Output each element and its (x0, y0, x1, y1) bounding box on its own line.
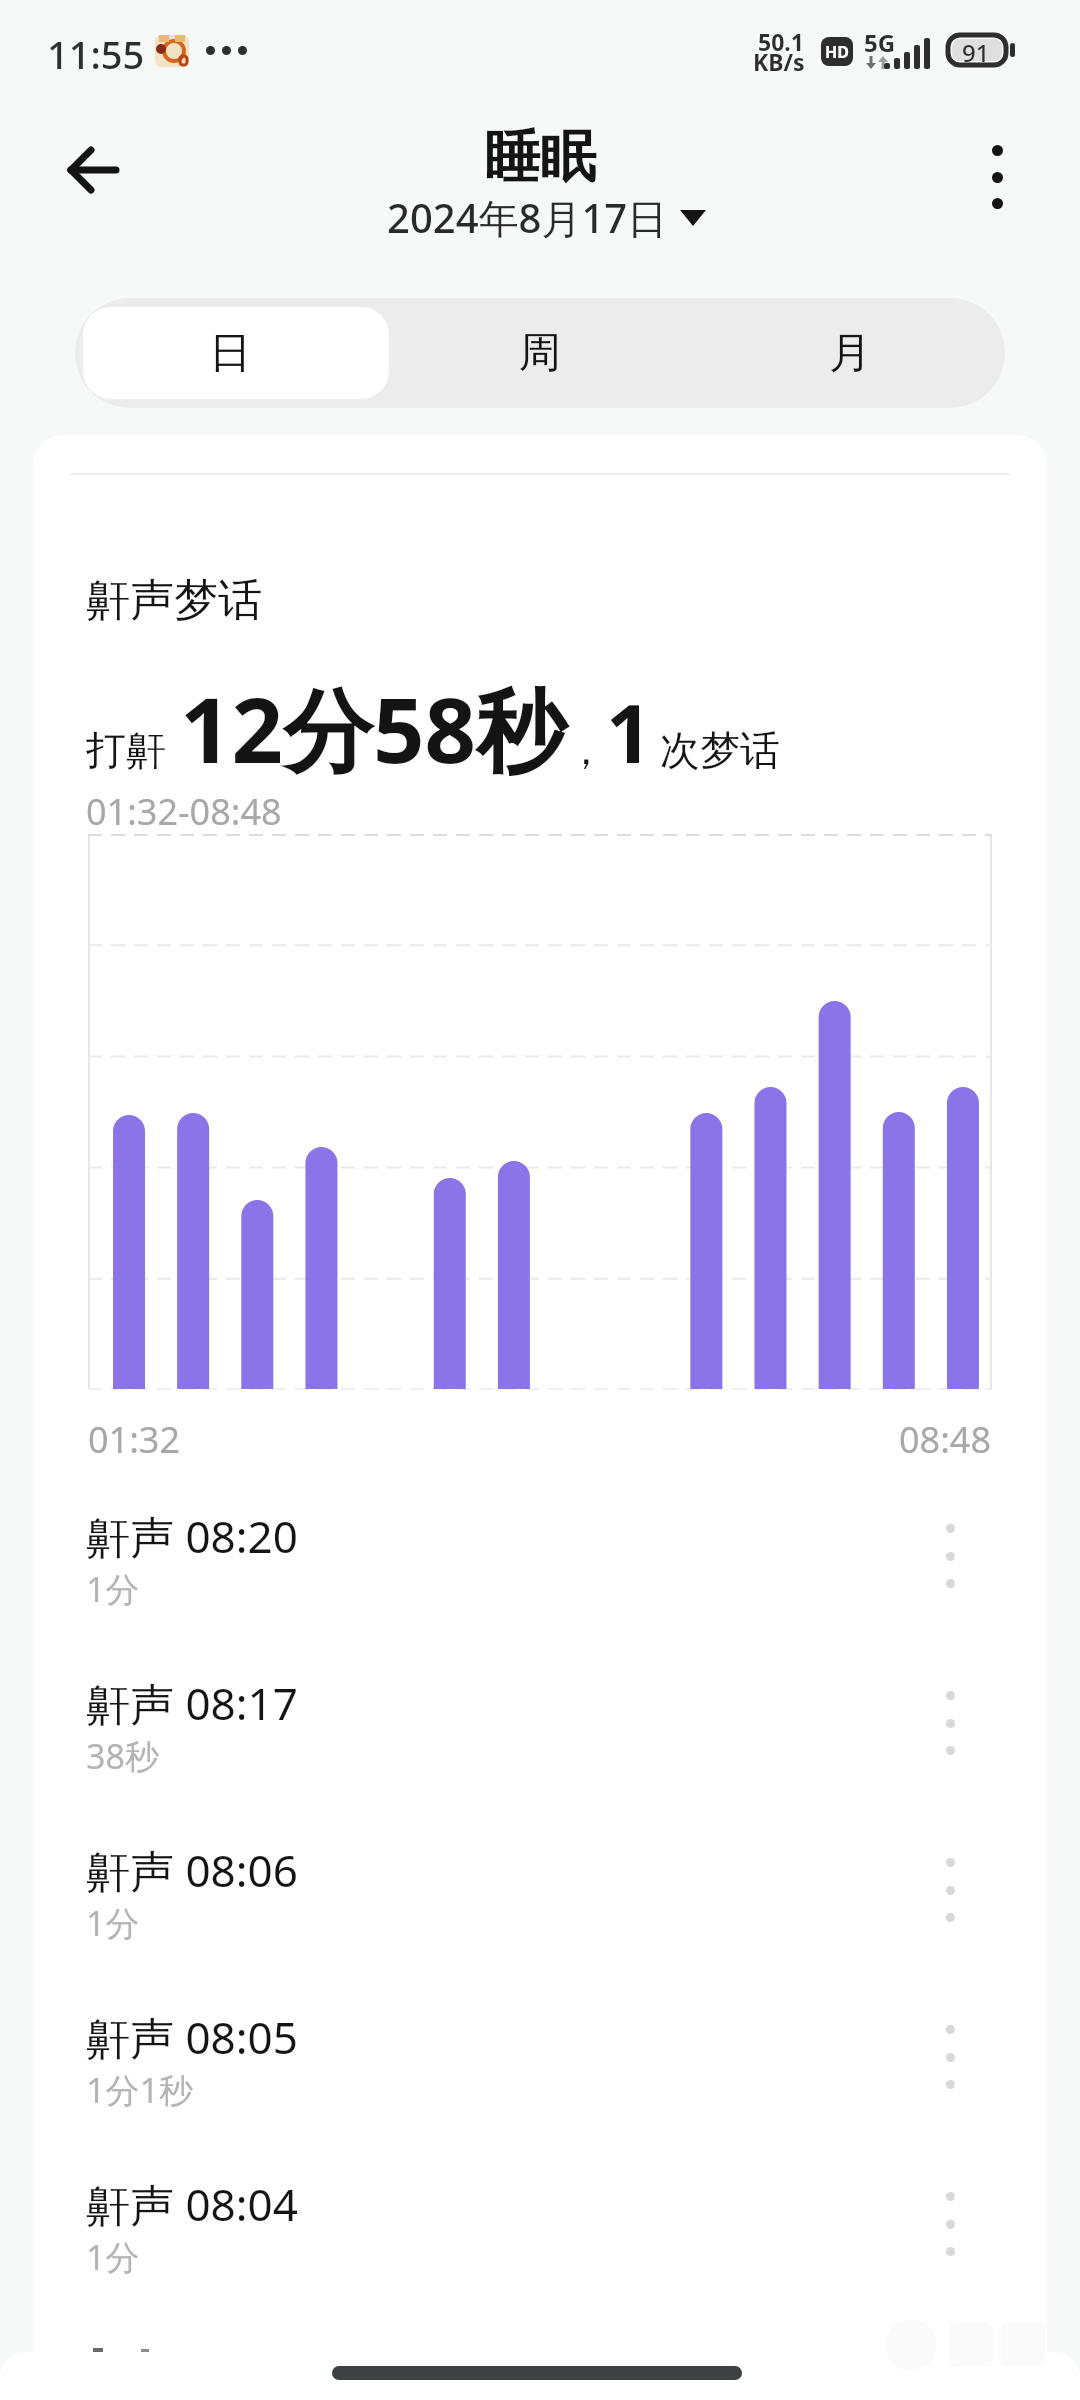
staticText: 2024年8月17日 (387, 190, 668, 245)
button[interactable] (55, 135, 131, 205)
button[interactable]: 2024年8月17日 (387, 190, 706, 245)
button[interactable]: 鼾声 08:20 (33, 1484, 1047, 1651)
staticText: 91 (962, 36, 990, 69)
staticText: 11:55 (47, 28, 145, 80)
button[interactable]: 鼾声 08:17 (33, 1651, 1047, 1818)
button[interactable]: 鼾声 08:06 (33, 1818, 1047, 1985)
staticText: 日 (209, 327, 251, 380)
staticText: 5G (864, 26, 896, 59)
button[interactable]: 周 (385, 298, 695, 408)
staticText: 38秒 (86, 1733, 159, 1779)
staticText: 08:48 (899, 1415, 992, 1464)
staticText: 1 (606, 677, 652, 786)
button[interactable] (975, 145, 1019, 209)
staticText: 睡眠 (484, 122, 596, 193)
staticText: 鼾声梦话 (86, 573, 262, 628)
staticText: 12分58秒 (180, 667, 566, 790)
button[interactable] (938, 1524, 962, 1588)
button[interactable]: 鼾声 08:05 (33, 1985, 1047, 2152)
staticText: 次梦话 (660, 725, 780, 775)
button[interactable] (938, 2025, 962, 2089)
staticText: 01:32 (88, 1415, 181, 1464)
staticText: 1分1秒 (86, 2067, 193, 2113)
button[interactable] (938, 1858, 962, 1922)
staticText: 鼾声 08:04 (86, 2174, 298, 2234)
staticText: 鼾声 08:06 (86, 1840, 298, 1900)
staticText: 1分 (86, 1566, 140, 1612)
staticText: 周 (519, 327, 561, 380)
staticText: 鼾声 08:20 (86, 1506, 298, 1566)
button[interactable]: 鼾声 08:04 (33, 2152, 1047, 2319)
staticText: HD (825, 41, 849, 63)
staticText: ， (566, 725, 606, 775)
staticText: 月 (829, 327, 871, 380)
staticText: KB/s (753, 46, 805, 77)
staticText: 打鼾 (86, 725, 166, 775)
staticText: 1分 (86, 1900, 140, 1946)
button[interactable]: 月 (695, 298, 1005, 408)
button[interactable] (938, 1691, 962, 1755)
staticText: 50.1 (758, 26, 804, 57)
button[interactable]: 日 (75, 298, 385, 408)
staticText: 鼾声 08:17 (86, 1673, 298, 1733)
staticText: 01:32-08:48 (86, 787, 282, 836)
staticText: 鼾声 08:05 (86, 2007, 298, 2067)
staticText: 1分 (86, 2234, 140, 2280)
button[interactable] (938, 2192, 962, 2256)
